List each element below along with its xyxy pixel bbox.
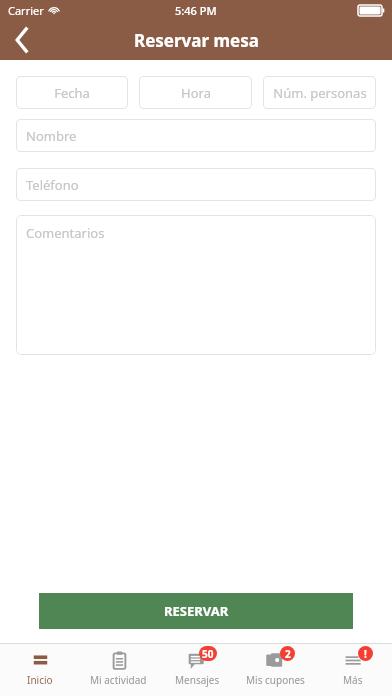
staticText: Teléfono: [26, 176, 79, 194]
staticText: Más: [343, 673, 363, 687]
button[interactable]: Hora: [139, 76, 252, 109]
button[interactable]: Comentarios: [16, 215, 376, 355]
staticText: Comentarios: [26, 224, 105, 242]
staticText: Hora: [181, 84, 211, 102]
staticText: 2: [285, 647, 291, 661]
staticText: Mi actividad: [90, 673, 147, 687]
button[interactable]: 2: [236, 644, 314, 696]
button[interactable]: Inicio: [0, 644, 79, 696]
button[interactable]: 50: [158, 644, 236, 696]
button[interactable]: Fecha: [16, 76, 128, 109]
staticText: Mensajes: [175, 673, 220, 687]
staticText: Núm. personas: [273, 84, 367, 102]
button[interactable]: Núm. personas: [263, 76, 376, 109]
button[interactable]: Teléfono: [16, 168, 376, 201]
staticText: Carrier: [8, 3, 44, 18]
button[interactable]: Nombre: [16, 119, 376, 152]
staticText: Fecha: [54, 84, 90, 102]
button[interactable]: !: [314, 644, 392, 696]
staticText: Inicio: [27, 673, 53, 687]
staticText: Nombre: [26, 127, 77, 145]
button[interactable]: Mi actividad: [79, 644, 158, 696]
button[interactable]: Back: [0, 20, 44, 60]
staticText: 5:46 PM: [175, 3, 217, 18]
button[interactable]: RESERVAR: [39, 593, 353, 629]
staticText: !: [364, 647, 367, 661]
staticText: Mis cupones: [246, 673, 305, 687]
staticText: RESERVAR: [164, 602, 229, 620]
staticText: 50: [202, 647, 214, 661]
staticText: Reservar mesa: [134, 29, 259, 52]
